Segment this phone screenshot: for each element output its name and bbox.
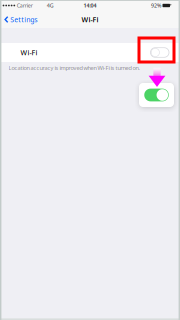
button[interactable]: Wi-Fi xyxy=(0,43,180,62)
button[interactable]: Settings xyxy=(0,12,41,27)
staticText: Carrier xyxy=(17,2,33,9)
staticText: Location accuracy is improved when Wi-Fi… xyxy=(9,64,141,72)
staticText: 14:04 xyxy=(83,2,96,9)
staticText: 92% xyxy=(151,2,161,9)
staticText: Wi-Fi xyxy=(20,48,37,57)
staticText: Wi-Fi xyxy=(81,15,98,24)
staticText: 4G xyxy=(47,2,54,9)
staticText: Settings xyxy=(10,15,37,24)
